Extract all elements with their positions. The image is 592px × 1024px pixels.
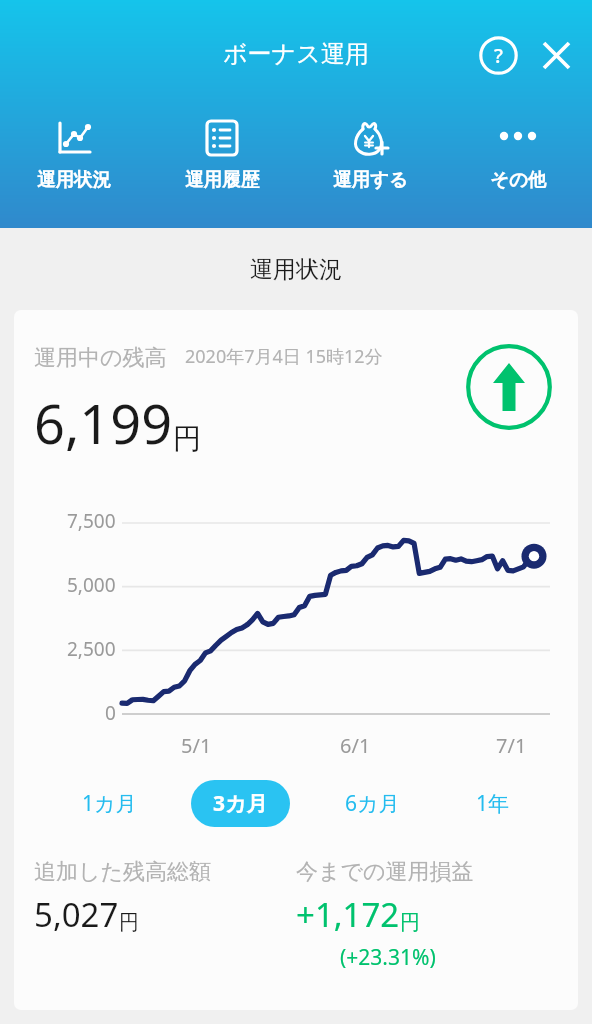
staticText: (+23.31%): [340, 943, 436, 972]
staticText: ?: [494, 42, 503, 69]
staticText: 6/1: [340, 732, 371, 759]
staticText: 6カ月: [345, 789, 400, 818]
button[interactable]: 運用履歴: [148, 113, 296, 193]
staticText: 今までの運用損益: [296, 858, 474, 886]
staticText: 運用する: [333, 168, 408, 191]
staticText: 円: [119, 910, 139, 935]
staticText: 運用履歴: [185, 168, 259, 191]
staticText: 円: [173, 421, 201, 456]
staticText: 5,000: [67, 572, 116, 598]
staticText: 運用状況: [37, 168, 111, 191]
staticText: 3カ月: [213, 789, 268, 818]
button[interactable]: 1年: [454, 780, 532, 827]
button[interactable]: 3カ月: [191, 780, 290, 827]
button[interactable]: 1カ月: [60, 780, 159, 827]
button[interactable]: 閉じる: [532, 31, 580, 79]
staticText: 1年: [476, 789, 510, 818]
other: 上昇: [466, 344, 552, 430]
button[interactable]: ヘルプ: [474, 31, 522, 79]
staticText: その他: [490, 168, 547, 191]
staticText: 2020年7月4日 15時12分: [185, 344, 383, 369]
staticText: 運用中の残高: [34, 344, 167, 372]
staticText: 7/1: [496, 732, 527, 759]
staticText: 6,199: [34, 386, 173, 460]
staticText: 運用状況: [250, 255, 342, 284]
staticText: 7,500: [67, 508, 116, 534]
staticText: 2,500: [67, 636, 116, 662]
button[interactable]: その他: [444, 113, 592, 193]
button[interactable]: 運用状況: [0, 113, 148, 193]
button[interactable]: 運用する: [296, 113, 444, 193]
staticText: ボーナス運用: [223, 39, 369, 69]
staticText: +1,172: [296, 892, 400, 937]
staticText: 1カ月: [82, 789, 137, 818]
staticText: 5,027: [34, 892, 119, 937]
staticText: 5/1: [181, 732, 212, 759]
staticText: 円: [400, 910, 420, 935]
staticText: 追加した残高総額: [34, 858, 212, 886]
button[interactable]: 6カ月: [323, 780, 422, 827]
staticText: 0: [105, 700, 116, 726]
